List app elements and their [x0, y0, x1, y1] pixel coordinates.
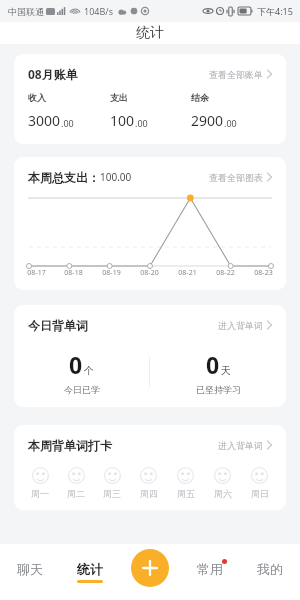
- staticText: 查看全部账单: [209, 69, 263, 80]
- staticText: 08-23: [254, 268, 273, 278]
- staticText: 周四: [140, 488, 158, 499]
- button[interactable]: Add: [131, 549, 169, 587]
- staticText: 08-21: [178, 268, 197, 278]
- staticText: 进入背单词: [218, 440, 263, 451]
- staticText: 收入: [28, 92, 46, 103]
- staticText: 3000: [28, 111, 61, 130]
- staticText: 统计: [136, 24, 164, 42]
- staticText: 下午4:15: [257, 5, 293, 17]
- button[interactable]: 常用: [180, 553, 240, 591]
- staticText: 本周总支出：: [28, 170, 100, 185]
- staticText: 周五: [177, 488, 195, 499]
- staticText: .00: [135, 117, 148, 129]
- staticText: 周日: [251, 488, 269, 499]
- staticText: 周二: [67, 488, 85, 499]
- staticText: 104B/s: [84, 5, 113, 17]
- staticText: 常用: [197, 561, 223, 577]
- button[interactable]: 统计: [60, 553, 120, 591]
- staticText: 已坚持学习: [196, 384, 241, 395]
- staticText: 08-22: [216, 268, 235, 278]
- staticText: 进入背单词: [218, 320, 263, 331]
- staticText: 今日已学: [64, 384, 100, 395]
- staticText: 100.00: [100, 170, 132, 184]
- staticText: 统计: [77, 561, 103, 577]
- staticText: 结余: [191, 92, 209, 103]
- staticText: 聊天: [17, 561, 43, 577]
- button[interactable]: 查看全部图表: [207, 168, 275, 186]
- staticText: 0: [206, 349, 220, 380]
- staticText: 我的: [257, 561, 283, 577]
- staticText: 周一: [31, 488, 49, 499]
- button[interactable]: 聊天: [0, 553, 60, 591]
- staticText: 个: [84, 364, 94, 377]
- staticText: 中国联通: [8, 6, 44, 17]
- staticText: 100: [110, 111, 135, 130]
- staticText: 本周背单词打卡: [28, 438, 112, 453]
- button[interactable]: 进入背单词: [216, 436, 275, 454]
- staticText: 周六: [214, 488, 232, 499]
- staticText: 08-20: [140, 268, 159, 278]
- staticText: 08-17: [27, 268, 46, 278]
- button[interactable]: 我的: [240, 553, 300, 591]
- staticText: .00: [61, 117, 74, 129]
- staticText: 08月账单: [28, 66, 78, 82]
- button[interactable]: 进入背单词: [216, 316, 275, 334]
- staticText: 0: [69, 349, 83, 380]
- staticText: 支出: [110, 92, 128, 103]
- staticText: 天: [221, 364, 231, 377]
- button[interactable]: 查看全部账单: [207, 65, 275, 83]
- staticText: 周三: [103, 488, 121, 499]
- staticText: 今日背单词: [28, 318, 88, 333]
- staticText: 2900: [191, 111, 224, 130]
- staticText: 08-18: [64, 268, 83, 278]
- staticText: 查看全部图表: [209, 172, 263, 183]
- staticText: 08-19: [102, 268, 121, 278]
- staticText: .00: [224, 117, 237, 129]
